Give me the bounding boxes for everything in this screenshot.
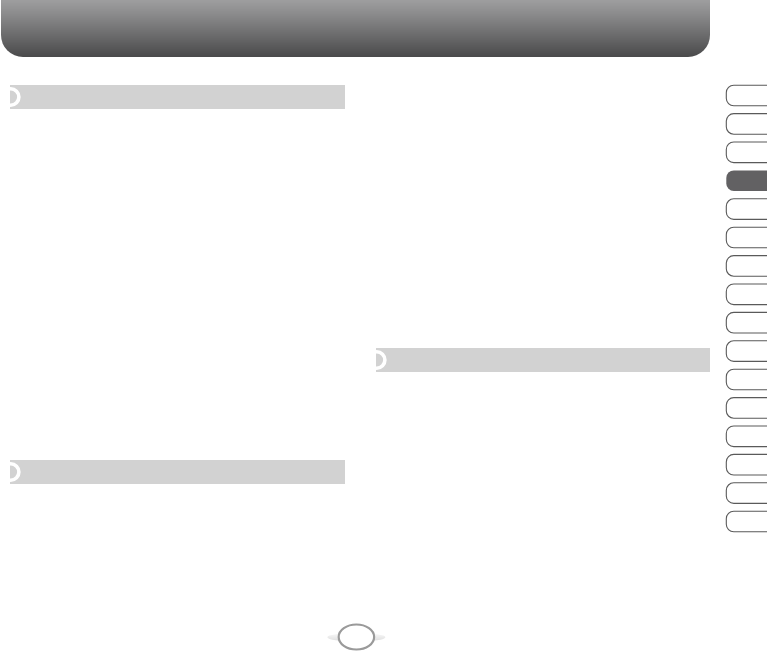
button[interactable]: Rail destination 15 — [726, 483, 767, 504]
button[interactable]: Open navigation menu — [1, 0, 58, 57]
button[interactable]: Rail destination 11 — [726, 369, 767, 390]
button[interactable]: Made for you — [376, 348, 710, 372]
button[interactable]: Rail destination 3 — [726, 142, 767, 163]
button[interactable]: Rail destination 10 — [726, 341, 767, 362]
button[interactable]: Open navigation menu — [1, 0, 710, 57]
button[interactable]: Rail destination 5 — [726, 199, 767, 220]
button[interactable]: Your library — [10, 460, 345, 484]
button[interactable]: Rail destination 14 — [726, 454, 767, 475]
button[interactable]: Rail destination 13 — [726, 426, 767, 447]
button[interactable]: Recently played — [10, 85, 345, 109]
button[interactable]: Rail destination 12 — [726, 398, 767, 419]
button[interactable]: Rail destination 9 — [726, 312, 767, 333]
button[interactable]: More options — [653, 0, 710, 57]
button[interactable]: Rail destination 2 — [726, 114, 767, 135]
button[interactable]: Rail destination 6 — [726, 227, 767, 248]
button[interactable]: Rail destination 16 — [726, 511, 767, 532]
button[interactable]: Create new item — [338, 623, 376, 650]
button[interactable]: Rail destination 4, selected — [726, 170, 767, 191]
button[interactable]: Rail destination 1 — [726, 85, 767, 106]
button[interactable]: Rail destination 7 — [726, 256, 767, 277]
button[interactable]: Rail destination 8 — [726, 284, 767, 305]
